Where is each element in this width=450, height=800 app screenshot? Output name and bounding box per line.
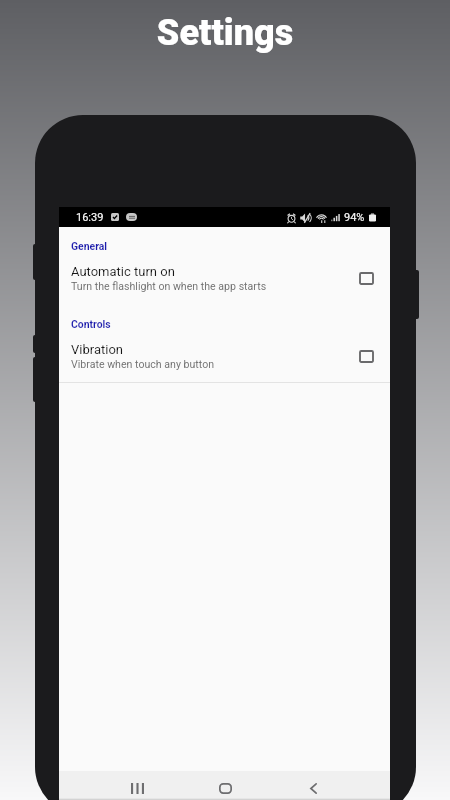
button[interactable]: Vibration xyxy=(354,344,378,368)
button[interactable]: Recent apps xyxy=(109,774,165,800)
staticText: 16:39 xyxy=(76,211,104,224)
button[interactable]: Automatic turn on xyxy=(354,266,378,290)
button[interactable]: Automatic turn on xyxy=(59,264,390,292)
button[interactable]: Vibration xyxy=(59,342,390,370)
staticText: Vibration xyxy=(71,342,123,357)
staticText: Vibrate when touch any button xyxy=(71,358,215,370)
staticText: Controls xyxy=(71,318,111,330)
staticText: Settings xyxy=(0,12,450,54)
staticText: Turn the flashlight on when the app star… xyxy=(71,280,267,292)
staticText: 94% xyxy=(344,211,365,224)
staticText: Automatic turn on xyxy=(71,264,175,279)
button[interactable]: Home xyxy=(197,774,253,800)
staticText: General xyxy=(71,240,108,252)
button[interactable]: Back xyxy=(285,774,341,800)
